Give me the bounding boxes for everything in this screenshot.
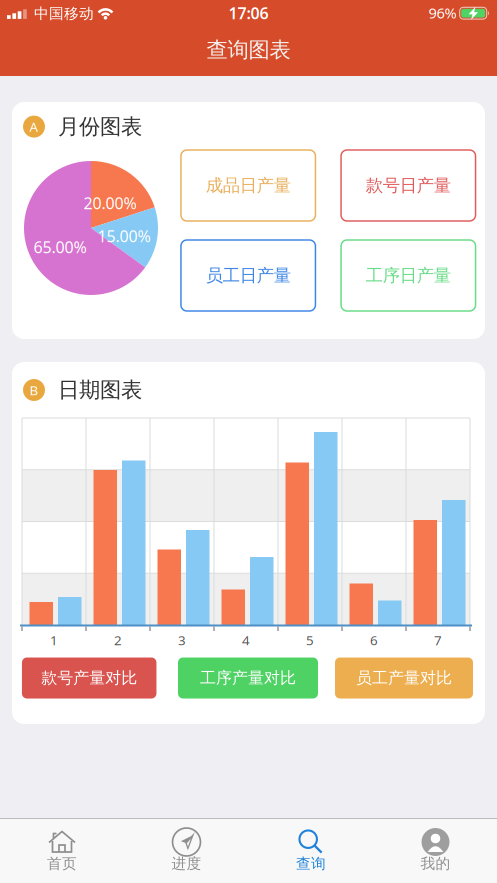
staticText: 工序产量对比 [200,668,296,688]
button[interactable]: 我的 [390,818,480,883]
button[interactable]: 首页 [17,818,107,883]
button[interactable]: 工序日产量 [341,240,476,311]
staticText: 员工日产量 [206,265,291,286]
staticText: 2 [114,631,122,649]
staticText: 3 [178,631,186,649]
staticText: 65.00% [33,236,86,258]
staticText: 5 [306,631,314,649]
staticText: 20.00% [83,192,136,214]
staticText: 员工产量对比 [356,668,452,688]
button[interactable]: 款号日产量 [341,150,476,221]
staticText: 96% [428,3,456,23]
staticText: 查询图表 [206,37,290,63]
staticText: 月份图表 [58,113,142,140]
button[interactable]: 进度 [141,818,231,883]
staticText: 4 [242,631,250,649]
staticText: 成品日产量 [206,175,291,196]
button[interactable]: 查询 [266,818,356,883]
button[interactable]: 成品日产量 [181,150,315,221]
staticText: 我的 [420,854,450,872]
staticText: 1 [50,631,58,649]
staticText: 15.00% [97,225,150,247]
button[interactable]: 工序产量对比 [178,657,318,698]
staticText: 7 [434,631,442,649]
staticText: 中国移动 [34,4,94,22]
button[interactable]: 员工日产量 [181,240,315,311]
staticText: B [29,381,38,399]
staticText: A [29,118,38,135]
button[interactable]: 款号产量对比 [22,657,156,698]
staticText: 款号日产量 [366,175,451,196]
staticText: 进度 [171,854,201,872]
staticText: 日期图表 [58,377,142,403]
button[interactable]: 员工产量对比 [335,657,473,698]
staticText: 查询 [296,854,326,872]
staticText: 款号产量对比 [41,668,137,688]
staticText: 6 [370,631,378,649]
staticText: 工序日产量 [366,265,451,286]
staticText: 17:06 [228,2,268,24]
staticText: 首页 [47,854,77,872]
